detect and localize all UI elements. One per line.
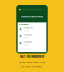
staticText: 200 pts [23,36,29,39]
staticText: 100 pts [23,29,29,32]
staticText: MY REWARDS [19,23,29,26]
staticText: Collect points every time [19,61,45,64]
staticText: EARN POINTS ON EVERY ORDER [21,15,43,18]
staticText: Free side [23,34,31,36]
button[interactable]: Free side [18,33,46,40]
button[interactable]: Free drink [18,26,46,33]
staticText: Free meal [23,41,32,43]
staticText: you order and redeem. [21,65,43,68]
staticText: 400 pts [23,43,29,46]
button[interactable]: Free meal [18,40,46,47]
staticText: GET REWARDED [20,55,44,59]
staticText: Free drink [23,27,32,29]
